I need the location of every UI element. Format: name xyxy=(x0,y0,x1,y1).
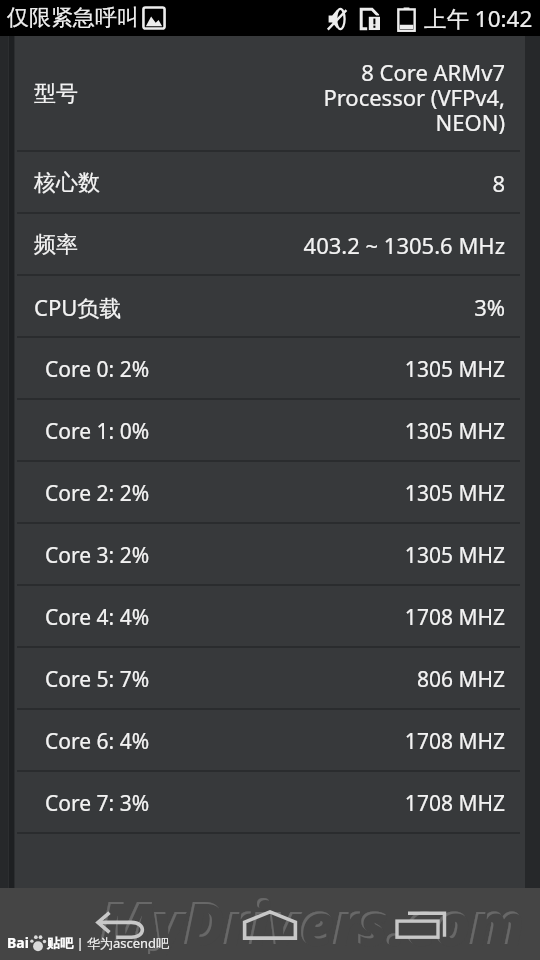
staticText: MyDrivers.com xyxy=(101,884,525,956)
staticText: Bai xyxy=(7,933,29,952)
button[interactable]: Home xyxy=(210,900,330,950)
staticText: Core 6: 4% xyxy=(45,727,150,756)
staticText: 806 MHZ xyxy=(416,665,505,694)
staticText: 仅限紧急呼叫 xyxy=(7,4,139,32)
staticText: Core 0: 2% xyxy=(45,355,150,384)
button[interactable]: Core 4: 4% xyxy=(15,586,525,648)
button[interactable]: Recent apps xyxy=(361,900,481,950)
staticText: 1305 MHZ xyxy=(404,479,505,508)
staticText: 3% xyxy=(474,292,505,322)
staticText: | 华为ascend吧 xyxy=(73,934,170,952)
staticText: 403.2 ~ 1305.6 MHz xyxy=(303,230,505,260)
staticText: CPU负载 xyxy=(34,292,122,322)
staticText: 1305 MHZ xyxy=(404,355,505,384)
staticText: 贴吧 xyxy=(47,935,73,951)
button[interactable]: Core 3: 2% xyxy=(15,524,525,586)
staticText: Core 5: 7% xyxy=(45,665,150,694)
button[interactable]: CPU负载 xyxy=(15,276,525,338)
button[interactable]: 核心数 xyxy=(15,152,525,214)
staticText: 1708 MHZ xyxy=(404,603,505,632)
staticText: 1305 MHZ xyxy=(404,541,505,570)
staticText: Core 1: 0% xyxy=(45,417,150,446)
staticText: 8 xyxy=(492,168,505,198)
staticText: 上午 10:42 xyxy=(424,3,533,34)
button[interactable]: Core 2: 2% xyxy=(15,462,525,524)
staticText: 1305 MHZ xyxy=(404,417,505,446)
button[interactable]: Core 1: 0% xyxy=(15,400,525,462)
button[interactable]: 频率 xyxy=(15,214,525,276)
button[interactable]: 型号 xyxy=(15,36,525,152)
button[interactable]: Back xyxy=(61,900,181,950)
staticText: Core 3: 2% xyxy=(45,541,150,570)
button[interactable]: Core 6: 4% xyxy=(15,710,525,772)
staticText: 型号 xyxy=(34,80,78,108)
staticText: 频率 xyxy=(34,231,78,259)
button[interactable]: Core 5: 7% xyxy=(15,648,525,710)
staticText: 核心数 xyxy=(34,169,100,197)
button[interactable]: Core 0: 2% xyxy=(15,338,525,400)
button[interactable]: Core 7: 3% xyxy=(15,772,525,834)
staticText: Core 4: 4% xyxy=(45,603,150,632)
staticText: 1708 MHZ xyxy=(404,789,505,818)
staticText: 1708 MHZ xyxy=(404,727,505,756)
staticText: 8 Core ARMv7 Processor (VFPv4, NEON) xyxy=(320,57,505,137)
staticText: Core 7: 3% xyxy=(45,789,150,818)
staticText: MyDrivers.com xyxy=(99,882,523,954)
staticText: Core 2: 2% xyxy=(45,479,150,508)
